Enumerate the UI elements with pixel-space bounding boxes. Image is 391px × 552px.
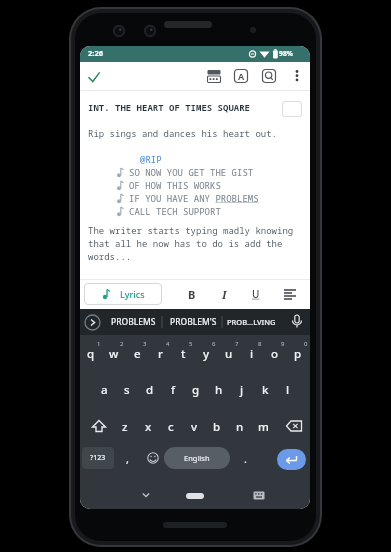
staticText: words... [88,250,132,262]
staticText: c [168,419,174,435]
staticText: 1 [97,340,101,348]
button[interactable]: p [287,344,309,364]
staticText: ?123 [90,453,106,463]
staticText: q [87,346,95,362]
staticText: English [184,453,210,463]
button[interactable]: , [121,450,133,466]
staticText: d [146,382,154,398]
staticText: OF HOW THIS WORKS [129,179,221,191]
button[interactable]: I [214,283,234,305]
button[interactable] [280,283,300,305]
button[interactable] [258,65,280,87]
staticText: CALL TECH SUPPORT [129,205,221,217]
button[interactable]: y [195,344,217,364]
staticText: y [203,346,210,362]
button[interactable]: i [241,344,263,364]
staticText: t [181,346,186,362]
button[interactable] [136,486,156,504]
button[interactable]: q [80,344,102,364]
button[interactable]: b [206,417,228,437]
staticText: I [222,287,227,302]
button[interactable]: ?123 [82,447,114,469]
staticText: m [258,419,269,435]
button[interactable] [85,70,105,88]
staticText: v [191,419,198,435]
staticText: 5 [189,340,193,348]
staticText: PROBLEMS [111,316,156,328]
button[interactable] [84,314,101,331]
button[interactable]: U [246,283,266,305]
staticText: PROBLEM'S [170,316,217,328]
staticText: a [101,382,108,398]
button[interactable]: l [277,380,299,400]
staticText: 2:26 [88,48,103,58]
staticText: k [262,382,269,398]
button[interactable] [288,313,306,331]
staticText: 0 [304,340,308,348]
button[interactable]: PROB...LVING [226,309,276,335]
button[interactable]: English [164,447,230,469]
button[interactable] [249,486,269,504]
staticText: h [215,382,223,398]
button[interactable]: B [182,283,202,305]
button[interactable] [277,449,306,470]
staticText: 8 [258,340,262,348]
button[interactable]: s [116,380,138,400]
staticText: 9 [281,340,285,348]
button[interactable]: A [230,65,252,87]
button[interactable]: z [114,417,136,437]
staticText: j [240,382,244,398]
staticText: that all he now has to do is add the [88,237,283,249]
button[interactable]: v [183,417,205,437]
button[interactable]: j [231,380,253,400]
button[interactable] [203,65,225,87]
button[interactable]: PROBLEMS [107,309,160,335]
button[interactable]: m [252,417,274,437]
button[interactable]: h [208,380,230,400]
staticText: 7 [235,340,239,348]
button[interactable]: d [139,380,161,400]
staticText: 98% [279,49,293,58]
button[interactable]: o [264,344,286,364]
button[interactable]: w [103,344,125,364]
button[interactable]: e [126,344,148,364]
button[interactable]: r [149,344,171,364]
button[interactable]: PROBLEM'S [166,309,220,335]
staticText: g [192,382,200,398]
button[interactable]: a [93,380,115,400]
button[interactable] [86,415,112,439]
staticText: w [109,346,119,362]
staticText: B [188,287,196,302]
staticText: 3 [143,340,147,348]
button[interactable] [287,65,307,87]
staticText: Rip sings and dances his heart out. [88,127,278,139]
staticText: INT. THE HEART OF TIMES SQUARE [88,101,251,113]
staticText: r [158,346,163,362]
staticText: The writer starts typing madly knowing [88,224,294,236]
staticText: U [252,287,260,301]
button[interactable]: c [160,417,182,437]
button[interactable]: t [172,344,194,364]
button[interactable]: u [218,344,240,364]
staticText: A [238,70,245,82]
staticText: z [122,419,128,435]
button[interactable]: x [137,417,159,437]
staticText: o [271,346,279,362]
button[interactable]: n [229,417,251,437]
button[interactable]: Lyrics [84,283,162,305]
button[interactable]: k [254,380,276,400]
staticText: PROB...LVING [227,317,276,327]
button[interactable] [144,449,162,467]
button[interactable]: f [162,380,184,400]
staticText: 6 [212,340,216,348]
staticText: x [145,419,152,435]
staticText: e [134,346,141,362]
staticText: p [294,346,302,362]
staticText: u [225,346,233,362]
button[interactable]: . [239,450,251,466]
button[interactable]: g [185,380,207,400]
button[interactable] [281,415,307,439]
staticText: s [124,382,130,398]
button[interactable] [186,493,204,499]
staticText: b [213,419,221,435]
